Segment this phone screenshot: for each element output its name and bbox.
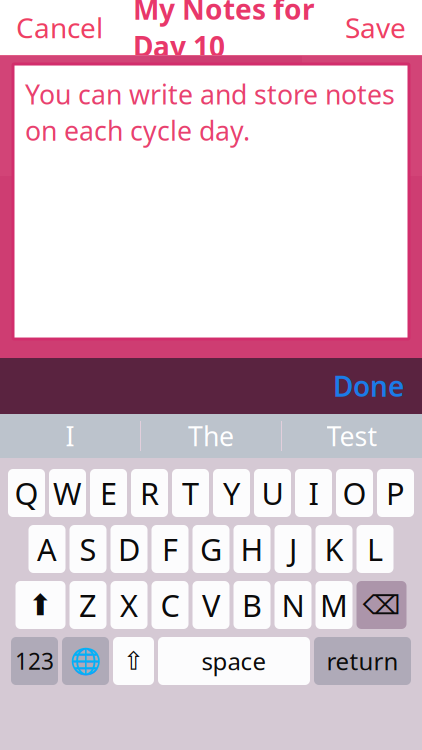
staticText: N: [281, 585, 304, 625]
button[interactable]: Dictation: [113, 637, 154, 685]
button[interactable]: The: [141, 414, 281, 458]
staticText: Done: [333, 367, 404, 405]
button[interactable]: N: [274, 581, 311, 629]
button[interactable]: V: [192, 581, 229, 629]
staticText: Cancel: [16, 9, 103, 46]
button[interactable]: Done: [321, 359, 416, 413]
staticText: S: [79, 529, 96, 569]
staticText: R: [140, 473, 159, 513]
button[interactable]: A: [28, 525, 65, 573]
button[interactable]: R: [131, 469, 168, 517]
staticText: M: [320, 585, 348, 625]
staticText: J: [289, 529, 297, 569]
button[interactable]: Y: [213, 469, 250, 517]
staticText: D: [118, 529, 140, 569]
button[interactable]: Z: [69, 581, 106, 629]
staticText: U: [261, 473, 283, 513]
staticText: I: [308, 473, 318, 513]
button[interactable]: Next keyboard: [62, 637, 109, 685]
staticText: T: [182, 473, 199, 513]
staticText: H: [240, 529, 263, 569]
staticText: You can write and store notes on each cy…: [25, 76, 395, 149]
staticText: B: [242, 585, 262, 625]
staticText: The: [188, 418, 234, 454]
button[interactable]: P: [377, 469, 414, 517]
staticText: G: [200, 529, 222, 569]
button[interactable]: I: [295, 469, 332, 517]
button[interactable]: C: [151, 581, 188, 629]
button[interactable]: H: [233, 525, 270, 573]
button[interactable]: W: [49, 469, 86, 517]
button[interactable]: L: [356, 525, 393, 573]
staticText: F: [162, 529, 178, 569]
button[interactable]: return: [314, 637, 411, 685]
button[interactable]: Save: [335, 1, 416, 54]
staticText: 123: [15, 646, 54, 676]
staticText: Q: [14, 473, 38, 513]
button[interactable]: 123: [11, 637, 58, 685]
staticText: Z: [79, 585, 97, 625]
staticText: W: [53, 473, 82, 513]
staticText: My Notes for Day 10: [133, 0, 315, 65]
staticText: X: [120, 585, 138, 625]
staticText: 🌐: [69, 646, 101, 675]
staticText: E: [100, 473, 117, 513]
staticText: K: [324, 529, 343, 569]
staticText: ⇧: [123, 647, 144, 675]
button[interactable]: F: [151, 525, 188, 573]
button[interactable]: K: [315, 525, 352, 573]
button[interactable]: Test: [282, 414, 422, 458]
staticText: L: [367, 529, 383, 569]
button[interactable]: Delete: [356, 581, 406, 629]
button[interactable]: U: [254, 469, 291, 517]
staticText: Y: [223, 473, 240, 513]
button[interactable]: O: [336, 469, 373, 517]
staticText: P: [386, 473, 405, 513]
button[interactable]: Shift: [15, 581, 65, 629]
staticText: O: [342, 473, 366, 513]
button[interactable]: M: [315, 581, 352, 629]
button[interactable]: Q: [8, 469, 45, 517]
button[interactable]: D: [110, 525, 147, 573]
button[interactable]: J: [274, 525, 311, 573]
button[interactable]: S: [69, 525, 106, 573]
button[interactable]: T: [172, 469, 209, 517]
staticText: return: [326, 645, 398, 677]
button[interactable]: X: [110, 581, 147, 629]
staticText: C: [160, 585, 179, 625]
button[interactable]: G: [192, 525, 229, 573]
staticText: ⌫: [362, 590, 400, 620]
button[interactable]: B: [233, 581, 270, 629]
button[interactable]: I: [0, 414, 140, 458]
staticText: Test: [326, 418, 377, 454]
button[interactable]: E: [90, 469, 127, 517]
button[interactable]: Cancel: [6, 1, 113, 54]
staticText: A: [37, 529, 57, 569]
staticText: V: [202, 585, 220, 625]
button[interactable]: space: [158, 637, 310, 685]
staticText: space: [201, 645, 266, 677]
staticText: ⬆: [28, 588, 53, 622]
staticText: Save: [345, 9, 406, 46]
staticText: I: [65, 418, 74, 454]
